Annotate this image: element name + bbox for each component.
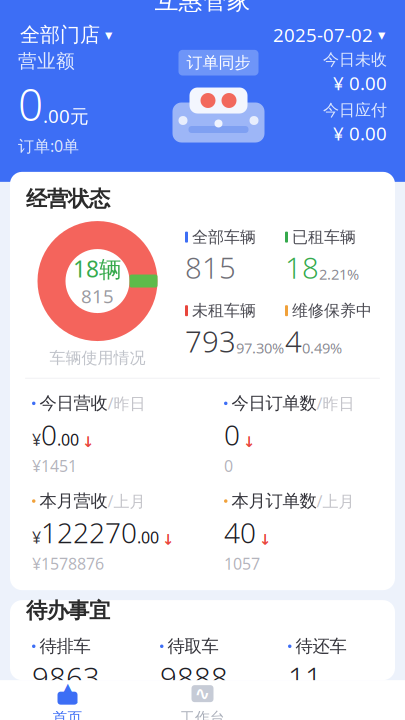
staticText: 未租车辆 [192, 301, 256, 321]
staticText: ↓ [259, 531, 271, 548]
staticText: 9888 [160, 658, 228, 697]
button[interactable]: 待取车 [138, 636, 266, 697]
staticText: 1057 [224, 553, 260, 574]
staticText: 18 [285, 248, 319, 287]
staticText: 经营状态 [26, 186, 110, 212]
button[interactable]: 待排车 [10, 636, 138, 697]
staticText: ↓ [243, 433, 255, 450]
staticText: ▾ [105, 26, 112, 43]
staticText: 0.49% [302, 338, 342, 357]
staticText: 18辆 [73, 254, 122, 284]
staticText: ¥ [32, 429, 41, 450]
button[interactable]: 全部门店 [20, 19, 112, 51]
staticText: ↓ [162, 531, 174, 548]
staticText: ¥1578876 [32, 553, 104, 574]
staticText: ↓ [82, 433, 94, 450]
staticText: .00元 [43, 103, 89, 128]
staticText: 今日未收 [323, 50, 387, 70]
staticText: 4 [285, 321, 302, 360]
button[interactable]: 待还车 [266, 636, 394, 697]
staticText: /昨日 [316, 393, 354, 414]
staticText: ¥ 0.00 [333, 70, 387, 95]
staticText: 0 [18, 75, 43, 133]
staticText: ∿ [194, 683, 210, 704]
staticText: 车辆使用情况 [49, 348, 145, 368]
staticText: 40 [224, 514, 256, 551]
staticText: /上月 [316, 490, 354, 512]
staticText: 今日营收 [39, 393, 107, 414]
staticText: 今日应付 [323, 100, 387, 120]
staticText: 2025-07-02 [273, 22, 373, 47]
staticText: ▾ [378, 26, 385, 43]
staticText: .00 [57, 429, 79, 450]
staticText: 0 [224, 455, 233, 476]
button[interactable]: 2025-07-02 [273, 18, 385, 51]
staticText: 待取车 [167, 636, 218, 657]
staticText: 待办事宜 [26, 597, 110, 624]
staticText: 122270 [41, 514, 137, 551]
staticText: 2.21% [319, 264, 359, 284]
staticText: /昨日 [107, 393, 145, 414]
staticText: .00 [137, 527, 159, 548]
staticText: 97.30% [236, 338, 284, 357]
staticText: /上月 [107, 490, 145, 512]
staticText: 815 [185, 248, 236, 287]
button[interactable]: ∿ [135, 680, 270, 720]
staticText: 815 [81, 284, 114, 308]
staticText: 工作台 [180, 709, 225, 720]
button[interactable]: ▲ [0, 680, 135, 720]
staticText: 本月营收 [39, 490, 107, 512]
staticText: 9863 [32, 658, 100, 697]
staticText: ¥ 0.00 [333, 121, 387, 146]
staticText: 全部车辆 [192, 227, 256, 247]
staticText: 营业额 [18, 50, 75, 73]
staticText: 首页 [52, 709, 82, 720]
staticText: 待排车 [39, 636, 90, 657]
staticText: 订单:0单 [18, 135, 79, 156]
staticText: 维修保养中 [292, 301, 372, 321]
staticText: 待还车 [295, 636, 346, 657]
staticText: ▲ [58, 677, 77, 706]
staticText: 互惠管家 [154, 0, 250, 16]
staticText: 全部门店 [20, 23, 100, 47]
staticText: 11 [288, 658, 322, 697]
staticText: 0 [41, 416, 57, 453]
staticText: 订单同步 [186, 53, 250, 73]
staticText: ¥1451 [32, 455, 77, 476]
staticText: 已租车辆 [292, 227, 356, 247]
staticText: 793 [185, 321, 236, 360]
staticText: ¥ [32, 527, 41, 548]
staticText: 今日订单数 [231, 393, 316, 414]
staticText: 0 [224, 416, 240, 453]
staticText: 本月订单数 [231, 490, 316, 512]
